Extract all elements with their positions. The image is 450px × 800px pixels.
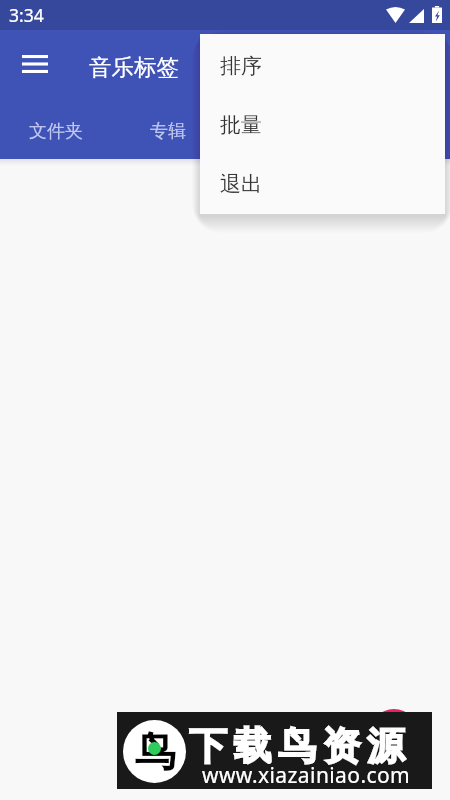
staticText: 文件夹	[29, 120, 83, 143]
button[interactable]: 批量	[200, 94, 445, 153]
button[interactable]: 专辑	[112, 108, 224, 159]
staticText: 3:34	[9, 3, 44, 27]
button[interactable]: 排序	[200, 35, 445, 94]
staticText: 鸟	[135, 727, 176, 779]
button[interactable]: 退出	[200, 153, 445, 212]
staticText: 专辑	[150, 120, 186, 143]
button[interactable]: Open navigation menu	[11, 40, 59, 88]
staticText: 下载鸟资源	[189, 722, 412, 770]
button[interactable]: 歌手	[224, 108, 337, 159]
button[interactable]: 全部	[337, 108, 450, 159]
button[interactable]: Add	[369, 709, 419, 759]
staticText: 音乐标签	[89, 53, 179, 81]
staticText: 排序	[220, 53, 262, 79]
staticText: 批量	[220, 112, 262, 138]
button[interactable]: 文件夹	[0, 108, 112, 159]
staticText: www.xiazainiao.com	[202, 761, 411, 790]
staticText: 退出	[220, 171, 262, 197]
